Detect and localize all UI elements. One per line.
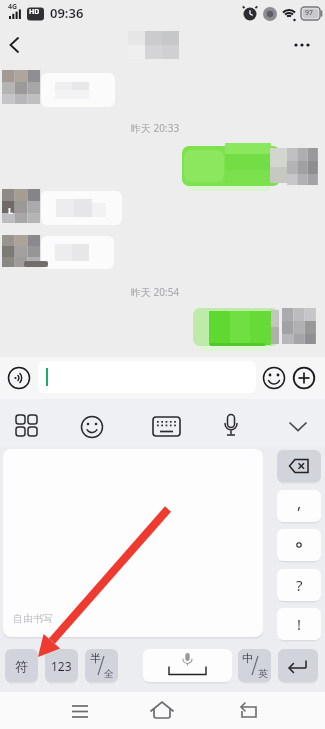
- staticText: 昨天 20:54: [131, 285, 180, 299]
- button[interactable]: ,: [277, 490, 321, 522]
- button[interactable]: ?: [277, 569, 321, 601]
- staticText: L: [8, 204, 14, 216]
- button[interactable]: [4, 363, 34, 393]
- button[interactable]: [77, 411, 107, 441]
- staticText: 昨天 20:33: [131, 121, 180, 135]
- staticText: 全: [104, 667, 114, 680]
- button[interactable]: 123: [45, 649, 78, 682]
- staticText: 4G: [8, 2, 18, 12]
- staticText: 123: [51, 658, 72, 674]
- button[interactable]: [38, 361, 256, 393]
- button[interactable]: [278, 649, 318, 682]
- staticText: 自由书写: [13, 612, 53, 625]
- button[interactable]: [62, 692, 98, 729]
- button[interactable]: [216, 411, 246, 441]
- button[interactable]: [283, 411, 313, 441]
- staticText: 09:36: [50, 4, 84, 22]
- button[interactable]: [259, 363, 289, 393]
- button[interactable]: [277, 529, 321, 561]
- button[interactable]: [144, 692, 180, 729]
- button[interactable]: [289, 363, 319, 393]
- button[interactable]: 符: [5, 649, 38, 682]
- staticText: 中: [242, 651, 253, 665]
- staticText: ,: [297, 492, 302, 514]
- staticText: 97: [305, 8, 314, 18]
- button[interactable]: [12, 411, 42, 441]
- button[interactable]: !: [277, 608, 321, 640]
- button[interactable]: [0, 28, 34, 62]
- button[interactable]: 半: [85, 649, 118, 682]
- button[interactable]: [288, 28, 322, 62]
- staticText: HD: [29, 7, 40, 17]
- staticText: 符: [15, 658, 28, 674]
- staticText: 半: [90, 651, 101, 665]
- button[interactable]: [230, 692, 266, 729]
- button[interactable]: 自由书写: [3, 449, 263, 637]
- staticText: 英: [258, 667, 268, 680]
- staticText: ?: [296, 575, 303, 595]
- button[interactable]: [277, 450, 321, 482]
- staticText: !: [297, 614, 302, 634]
- button[interactable]: 中: [238, 649, 271, 682]
- button[interactable]: [143, 649, 232, 682]
- button[interactable]: [151, 411, 183, 441]
